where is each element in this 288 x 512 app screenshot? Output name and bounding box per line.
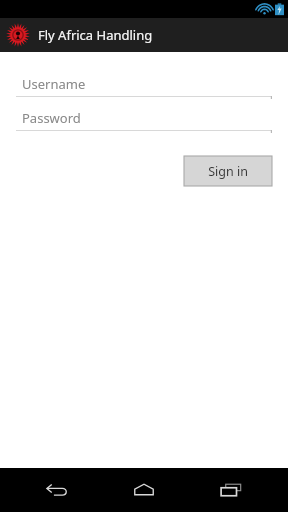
button[interactable]: Username bbox=[16, 72, 272, 100]
staticText: Username bbox=[22, 75, 86, 93]
button[interactable]: Sign in bbox=[184, 156, 272, 186]
staticText: Fly Africa Handling bbox=[38, 26, 153, 44]
button[interactable]: Recent apps bbox=[201, 468, 261, 512]
button[interactable]: Home bbox=[114, 468, 174, 512]
staticText: Sign in bbox=[208, 163, 248, 180]
button[interactable]: Password bbox=[16, 106, 272, 134]
staticText: Password bbox=[22, 109, 81, 127]
button[interactable]: Back bbox=[27, 468, 87, 512]
